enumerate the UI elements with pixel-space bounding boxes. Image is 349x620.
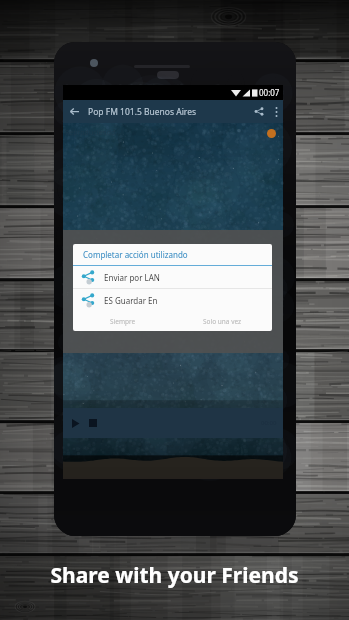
button[interactable]: Play	[66, 414, 84, 432]
button[interactable]: Share	[249, 100, 269, 123]
button[interactable]: Stop	[84, 414, 102, 432]
button[interactable]: Back	[63, 100, 85, 123]
staticText: Pop FM 101.5 Buenos Aires	[88, 106, 197, 118]
staticText: ES Guardar En	[104, 295, 158, 306]
button[interactable]: Siempre	[73, 311, 172, 331]
staticText: Reproduciendo	[65, 128, 116, 138]
button[interactable]: More options	[269, 100, 283, 123]
button[interactable]: Enviar por LAN	[73, 266, 272, 288]
staticText: Completar acción utilizando	[83, 249, 188, 260]
staticText: Solo una vez	[203, 317, 242, 326]
staticText: Enviar por LAN	[104, 272, 160, 283]
button[interactable]: Solo una vez	[172, 311, 272, 331]
button[interactable]: ES Guardar En	[73, 289, 272, 311]
staticText: Share with your Friends	[50, 561, 299, 590]
staticText: 00:07	[259, 87, 280, 98]
staticText: Siempre	[110, 317, 136, 326]
